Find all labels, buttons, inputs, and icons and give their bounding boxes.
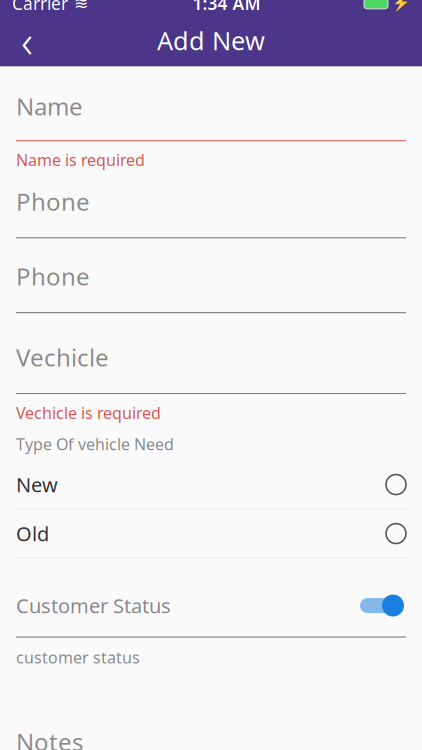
- staticText: ⚡: [392, 0, 410, 12]
- staticText: Carrier: [12, 0, 68, 15]
- button[interactable]: Old: [0, 510, 422, 559]
- staticText: Old: [16, 520, 49, 547]
- staticText: Notes: [16, 726, 83, 750]
- staticText: customer status: [16, 647, 140, 668]
- staticText: ≋: [74, 0, 89, 13]
- staticText: Name is required: [16, 149, 145, 170]
- button[interactable]: Customer Status: [0, 589, 422, 623]
- staticText: Phone: [16, 260, 90, 292]
- staticText: Name: [16, 90, 83, 122]
- button[interactable]: New: [0, 461, 422, 510]
- staticText: New: [16, 471, 58, 498]
- staticText: Phone: [16, 185, 90, 217]
- staticText: Type Of vehicle Need: [16, 433, 174, 454]
- staticText: 1:34 AM: [192, 0, 260, 15]
- staticText: Vechicle: [16, 341, 109, 373]
- staticText: ‹: [21, 10, 33, 70]
- button[interactable]: Back: [0, 16, 54, 64]
- staticText: Customer Status: [16, 592, 171, 619]
- staticText: Vechicle is required: [16, 402, 161, 423]
- staticText: Add New: [157, 23, 265, 57]
